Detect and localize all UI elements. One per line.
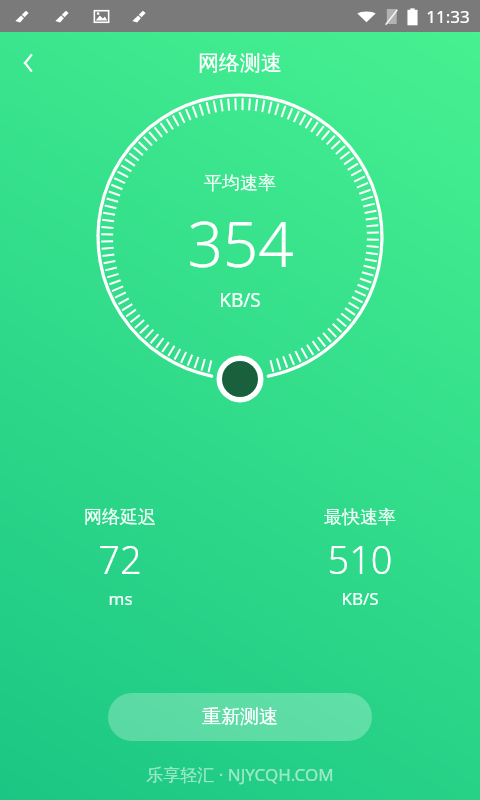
staticText: 乐享轻汇 · NJYCQH.COM <box>0 763 480 786</box>
staticText: KB/S <box>341 587 379 610</box>
staticText: 510 <box>327 533 393 585</box>
button[interactable]: 重新测速 <box>108 693 372 741</box>
staticText: KB/S <box>219 287 261 313</box>
staticText: 平均速率 <box>204 172 276 195</box>
staticText: 最快速率 <box>324 506 396 529</box>
staticText: 72 <box>98 533 142 585</box>
staticText: 354 <box>187 201 294 285</box>
button[interactable]: Back <box>0 35 56 91</box>
staticText: 重新测速 <box>202 705 278 729</box>
staticText: 11:33 <box>426 5 470 28</box>
staticText: ms <box>108 587 133 610</box>
staticText: 网络延迟 <box>84 506 156 529</box>
staticText: 网络测速 <box>198 50 282 76</box>
